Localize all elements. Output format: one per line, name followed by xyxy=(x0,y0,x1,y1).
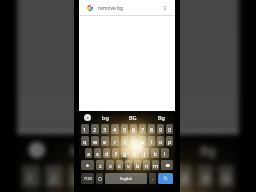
staticText: s xyxy=(96,150,99,157)
button[interactable]: 4 xyxy=(111,124,119,134)
button[interactable]: o xyxy=(157,136,164,146)
button[interactable]: 9 xyxy=(197,165,213,188)
button[interactable]: v xyxy=(125,160,132,170)
staticText: 1 xyxy=(83,126,87,133)
button[interactable]: n xyxy=(143,160,150,170)
button[interactable]: Emoji xyxy=(96,173,103,184)
button[interactable]: a xyxy=(85,148,92,158)
staticText: o xyxy=(159,138,163,145)
button[interactable]: 4 xyxy=(91,165,110,188)
button[interactable]: 2 xyxy=(91,124,99,134)
button[interactable]: bg xyxy=(91,111,119,123)
button[interactable]: 2 xyxy=(45,165,63,188)
staticText: English xyxy=(120,176,133,181)
button[interactable]: 6 xyxy=(130,124,137,134)
button[interactable]: Bg xyxy=(147,111,175,123)
staticText: a xyxy=(87,150,91,157)
button[interactable]: BG xyxy=(110,135,174,162)
staticText: b xyxy=(136,162,140,169)
button[interactable]: 7 xyxy=(139,124,146,134)
button[interactable]: 1 xyxy=(81,124,89,134)
staticText: 2 xyxy=(93,126,97,133)
staticText: x xyxy=(109,162,112,169)
button[interactable]: BG xyxy=(119,111,147,123)
button[interactable]: c xyxy=(116,160,123,170)
staticText: f xyxy=(115,150,117,157)
staticText: 3 xyxy=(73,169,82,185)
button[interactable]: 5 xyxy=(114,165,130,188)
staticText: bg xyxy=(102,114,109,121)
staticText: m xyxy=(153,162,159,169)
staticText: c xyxy=(118,162,121,169)
button[interactable]: Shift xyxy=(81,160,94,170)
button[interactable]: Backspace xyxy=(161,160,173,170)
button[interactable]: f xyxy=(112,148,119,158)
staticText: 9 xyxy=(202,169,211,185)
button[interactable]: l xyxy=(161,148,169,158)
button[interactable]: 7 xyxy=(156,165,172,188)
button[interactable]: Open features menu xyxy=(84,114,91,121)
staticText: n xyxy=(145,162,149,169)
button[interactable]: 6 xyxy=(135,165,151,188)
button[interactable]: remove bg xyxy=(79,0,175,16)
button[interactable]: p xyxy=(166,136,173,146)
button[interactable]: q xyxy=(81,136,89,146)
button[interactable]: 8 xyxy=(176,165,193,188)
button[interactable]: h xyxy=(131,148,139,158)
button[interactable]: d xyxy=(103,148,110,158)
button[interactable]: 0 xyxy=(166,124,173,134)
staticText: 8 xyxy=(150,126,154,133)
button[interactable]: e xyxy=(101,136,109,146)
button[interactable]: z xyxy=(96,160,104,170)
staticText: 9 xyxy=(159,126,163,133)
staticText: 6 xyxy=(132,126,136,133)
button[interactable]: . xyxy=(149,173,156,184)
button[interactable]: u xyxy=(139,136,146,146)
button[interactable]: 5 xyxy=(121,124,128,134)
button[interactable]: 0 xyxy=(218,165,234,188)
button[interactable]: 3 xyxy=(101,124,109,134)
button[interactable]: bg xyxy=(45,135,110,162)
button[interactable]: y xyxy=(130,136,137,146)
button[interactable]: Bg xyxy=(174,135,239,162)
staticText: r xyxy=(114,138,117,145)
staticText: 6 xyxy=(140,169,149,185)
staticText: 8 xyxy=(181,169,190,185)
staticText: l xyxy=(164,150,166,157)
staticText: remove bg xyxy=(98,5,124,12)
button[interactable]: m xyxy=(152,160,159,170)
button[interactable]: j xyxy=(141,148,149,158)
staticText: y xyxy=(132,138,135,145)
button[interactable]: Open features menu xyxy=(29,142,45,158)
button[interactable]: 1 xyxy=(22,165,40,188)
button[interactable]: English xyxy=(105,173,147,184)
staticText: d xyxy=(105,150,109,157)
button[interactable]: g xyxy=(121,148,129,158)
staticText: 4 xyxy=(113,126,117,133)
staticText: 5 xyxy=(123,126,127,133)
button[interactable]: 8 xyxy=(148,124,155,134)
button[interactable]: b xyxy=(134,160,141,170)
staticText: v xyxy=(127,162,130,169)
staticText: 7 xyxy=(141,126,145,133)
button[interactable]: w xyxy=(91,136,99,146)
staticText: g xyxy=(123,150,127,157)
button[interactable]: i xyxy=(148,136,155,146)
button[interactable]: k xyxy=(151,148,159,158)
staticText: Bg xyxy=(200,142,216,158)
button[interactable]: Search xyxy=(158,173,173,184)
staticText: ?123 xyxy=(84,176,92,181)
button[interactable]: s xyxy=(94,148,101,158)
button[interactable]: r xyxy=(111,136,119,146)
staticText: 5 xyxy=(119,169,128,185)
staticText: 0 xyxy=(168,126,172,133)
button[interactable]: 9 xyxy=(157,124,164,134)
staticText: BG xyxy=(133,142,151,158)
staticText: 0 xyxy=(223,169,232,185)
button[interactable]: t xyxy=(121,136,128,146)
staticText: k xyxy=(154,150,157,157)
staticText: t xyxy=(124,138,126,145)
button[interactable]: x xyxy=(106,160,114,170)
button[interactable]: 3 xyxy=(68,165,86,188)
button[interactable]: ?123 xyxy=(81,173,94,184)
